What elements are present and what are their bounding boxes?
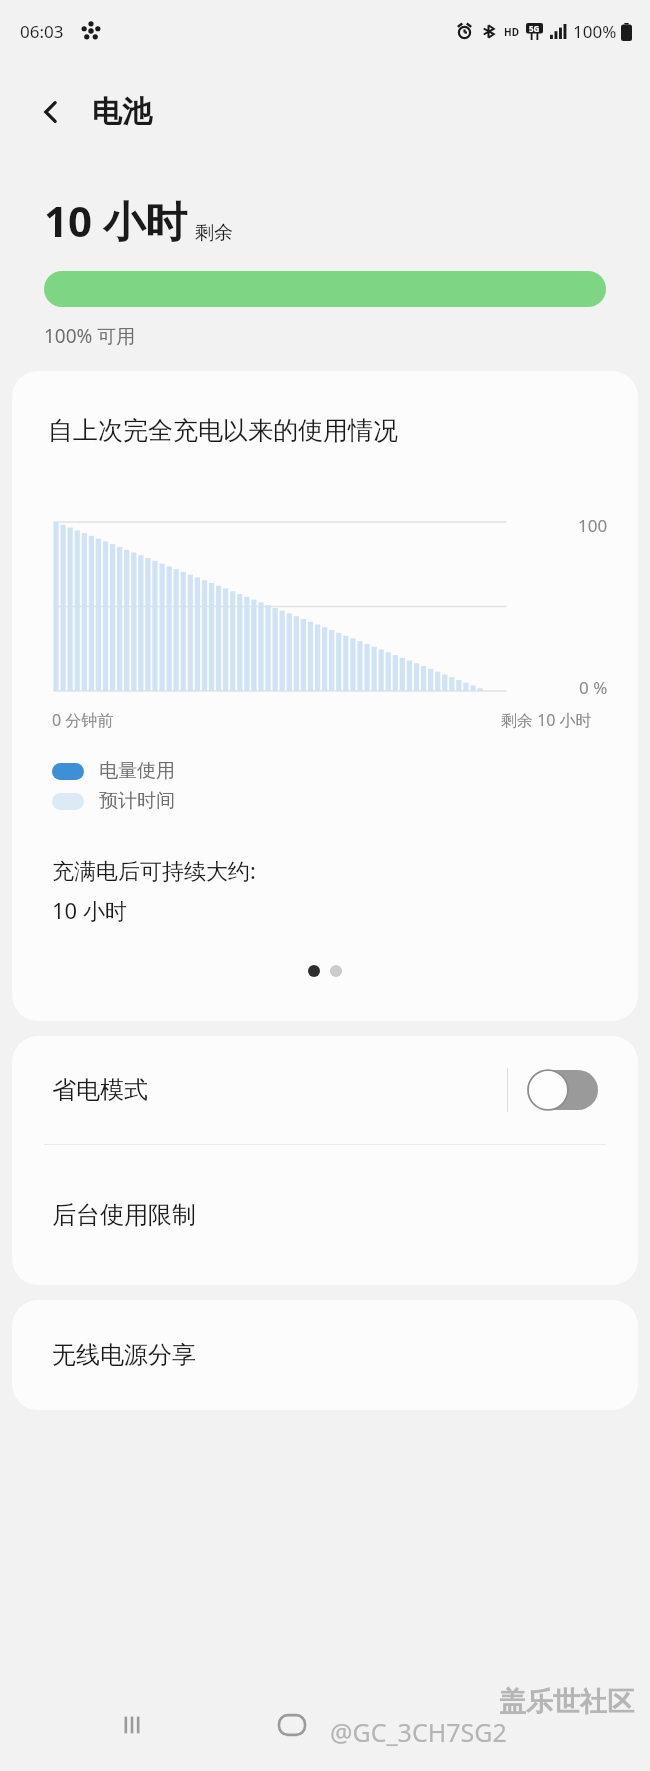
button[interactable]: Back <box>26 87 76 137</box>
button[interactable]: 后台使用限制 <box>12 1145 638 1285</box>
staticText: 0 % <box>579 676 608 699</box>
staticText: HD <box>504 25 519 39</box>
staticText: 10 小时 <box>44 192 187 249</box>
staticText: 电量使用 <box>99 759 175 783</box>
staticText: 剩余 10 小时 <box>501 709 592 731</box>
staticText: 无线电源分享 <box>52 1340 196 1370</box>
button[interactable]: Home <box>268 1701 316 1749</box>
button[interactable]: 省电模式 <box>12 1036 638 1144</box>
staticText: 5G <box>529 23 540 34</box>
staticText: 0 分钟前 <box>52 709 114 731</box>
staticText: 06:03 <box>20 20 64 43</box>
staticText: 电池 <box>92 93 152 131</box>
staticText: 剩余 <box>195 221 233 245</box>
staticText: 预计时间 <box>99 789 175 813</box>
staticText: 100% <box>573 20 617 43</box>
button[interactable]: 无线电源分享 <box>12 1300 638 1410</box>
staticText: 充满电后可持续大约: <box>52 855 256 885</box>
staticText: 盖乐世社区 <box>499 1685 634 1719</box>
staticText: 自上次完全充电以来的使用情况 <box>48 415 398 446</box>
staticText: 10 小时 <box>52 895 127 925</box>
staticText: 后台使用限制 <box>52 1200 196 1230</box>
staticText: 100 <box>578 514 608 537</box>
staticText: 100% 可用 <box>44 323 136 349</box>
button[interactable]: Recents <box>110 1703 154 1747</box>
staticText: 省电模式 <box>52 1075 148 1105</box>
staticText: @GC_3CH7SG2 <box>330 1715 507 1749</box>
button[interactable]: 省电模式 toggle <box>528 1069 598 1111</box>
